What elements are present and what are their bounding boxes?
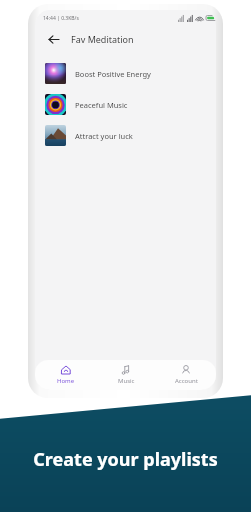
staticText: Fav Meditation <box>71 33 134 45</box>
button[interactable]: Account <box>156 360 216 390</box>
staticText: Peaceful Music <box>75 100 128 110</box>
staticText: Account <box>175 377 198 385</box>
staticText: Home <box>57 377 75 385</box>
button[interactable]: Home <box>35 360 96 390</box>
staticText: Boost Positive Energy <box>75 69 151 79</box>
staticText: 14:44 | 0.3KB/s <box>43 15 79 22</box>
button[interactable]: Music <box>96 360 156 390</box>
button[interactable]: Peaceful Music <box>35 89 216 120</box>
staticText: Attract your luck <box>75 131 133 141</box>
button[interactable]: Attract your luck <box>35 120 216 151</box>
button[interactable]: Boost Positive Energy <box>35 58 216 89</box>
staticText: Create your playlists <box>33 447 218 472</box>
staticText: Music <box>118 377 135 385</box>
button[interactable]: Back <box>44 30 62 48</box>
